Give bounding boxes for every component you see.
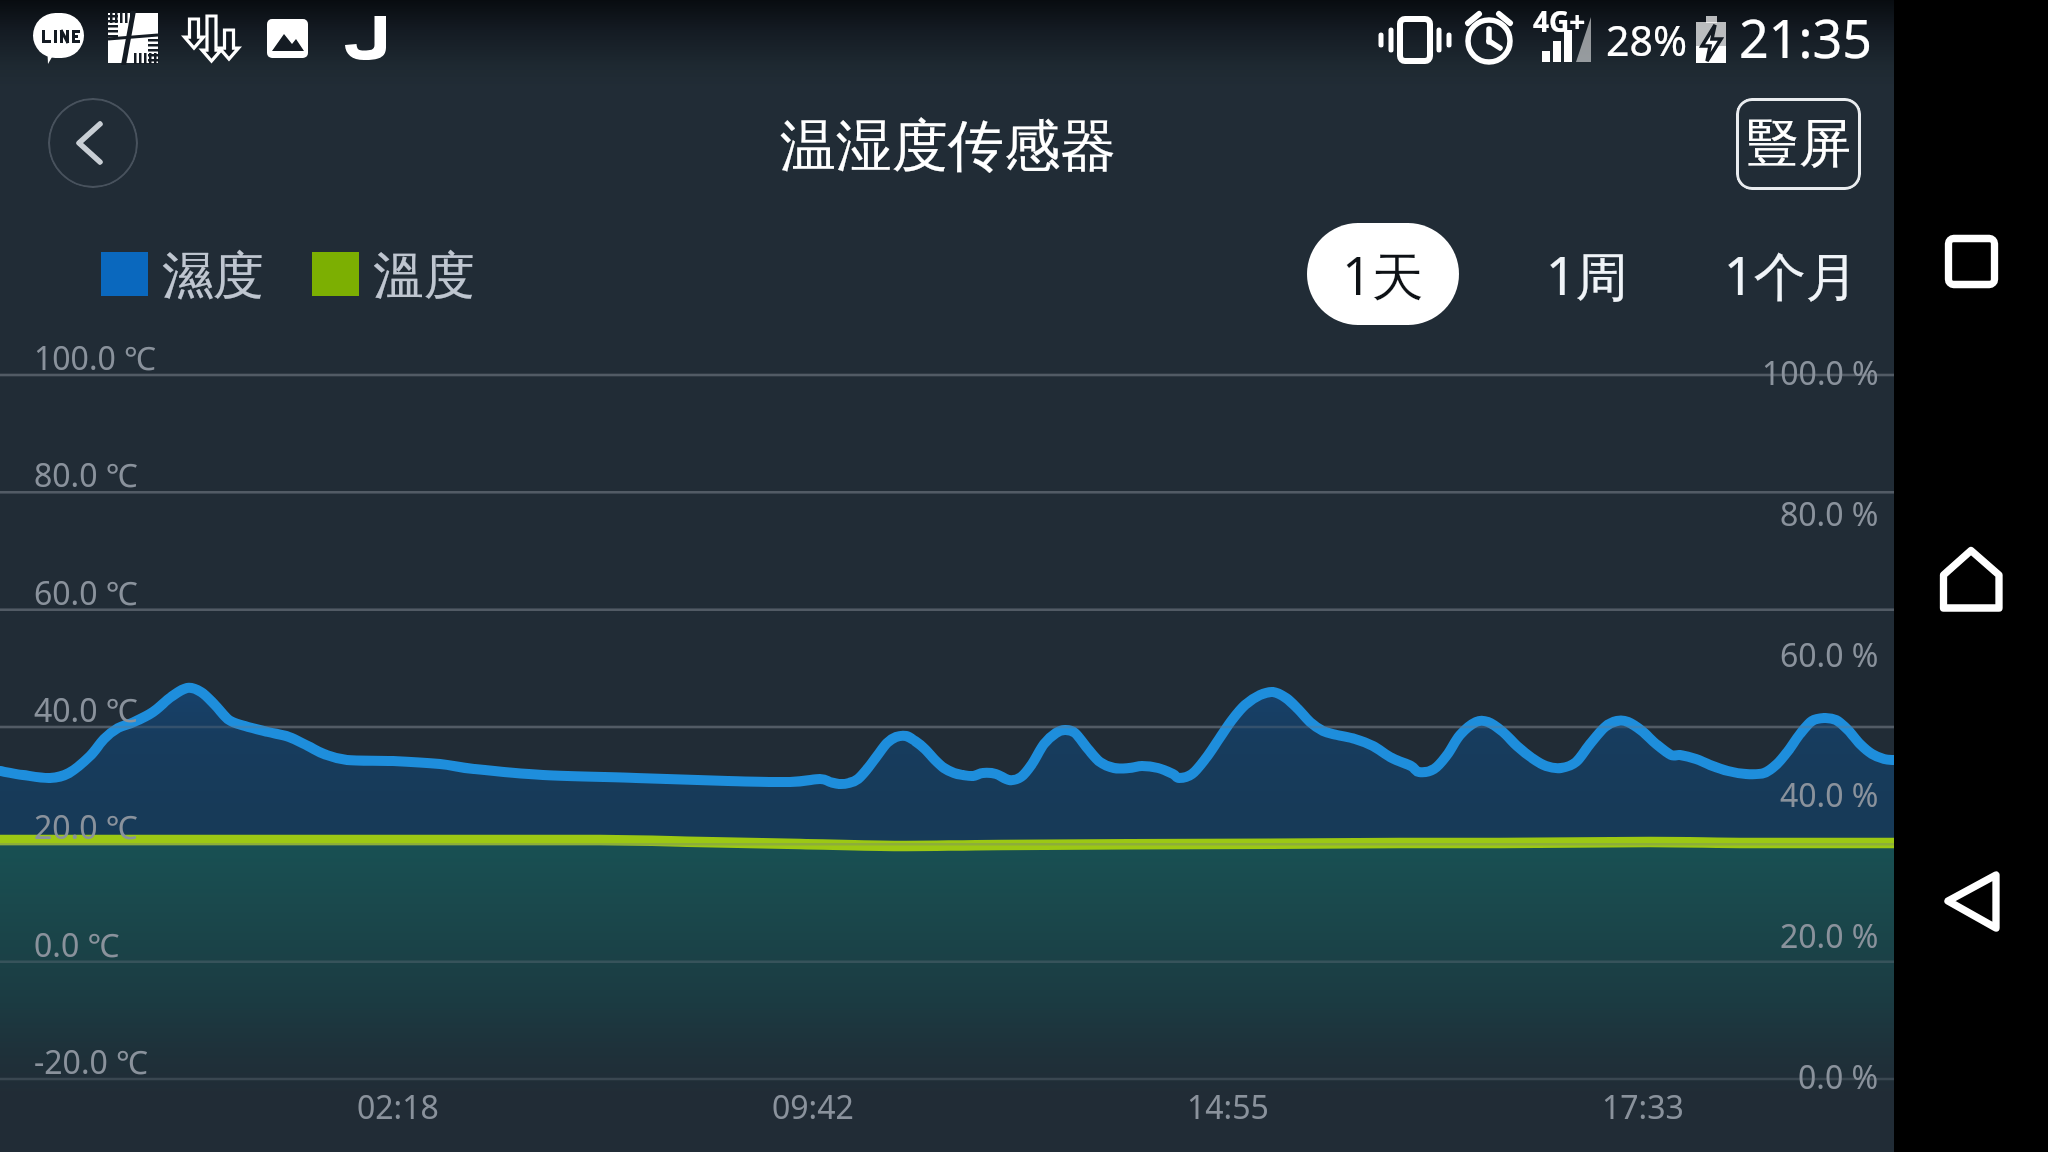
staticText: 80.0 ℃ [34, 453, 138, 497]
staticText: -20.0 ℃ [34, 1040, 148, 1084]
staticText: 4G+ [1533, 2, 1586, 40]
button[interactable]: 豎屏 [1736, 98, 1861, 190]
staticText: 豎屏 [1747, 111, 1851, 177]
staticText: 02:18 [357, 1085, 439, 1129]
staticText: 20.0 % [1780, 914, 1879, 958]
staticText: 17:33 [1602, 1085, 1684, 1129]
button[interactable]: Back [48, 98, 138, 188]
staticText: 濕度 [162, 244, 264, 304]
staticText: 1周 [1546, 239, 1628, 310]
staticText: 60.0 % [1780, 633, 1879, 677]
staticText: 20.0 ℃ [34, 805, 138, 849]
button[interactable]: 1天 [1307, 223, 1459, 325]
staticText: 40.0 ℃ [34, 688, 138, 732]
staticText: 0.0 % [1798, 1055, 1879, 1099]
button[interactable]: 1个月 [1711, 223, 1871, 325]
button[interactable]: 1周 [1523, 223, 1651, 325]
staticText: 60.0 ℃ [34, 571, 138, 615]
button[interactable]: 溫度 [312, 244, 512, 304]
button[interactable]: Back [1925, 855, 2018, 948]
staticText: 溫度 [373, 244, 475, 304]
staticText: 温湿度传感器 [780, 111, 1116, 182]
staticText: 100.0 ℃ [34, 336, 156, 380]
staticText: 1个月 [1724, 239, 1858, 310]
staticText: 21:35 [1739, 2, 1872, 73]
staticText: 100.0 % [1762, 351, 1879, 395]
staticText: 80.0 % [1780, 492, 1879, 536]
staticText: 14:55 [1187, 1085, 1269, 1129]
staticText: 09:42 [772, 1085, 854, 1129]
staticText: 1天 [1342, 239, 1424, 310]
button[interactable]: Recent apps [1925, 215, 2018, 308]
staticText: 0.0 ℃ [34, 923, 120, 967]
staticText: 40.0 % [1780, 773, 1879, 817]
button[interactable]: 濕度 [101, 244, 301, 304]
staticText: 28% [1606, 12, 1687, 68]
button[interactable]: Home [1925, 527, 2018, 620]
